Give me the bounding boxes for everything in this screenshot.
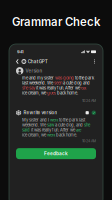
staticText: me and my sister — [22, 76, 55, 81]
button[interactable]: Apply rewrite — [92, 111, 96, 115]
staticText: she say — [22, 86, 35, 91]
staticText: she — [84, 123, 90, 128]
staticText: was going — [55, 76, 74, 81]
staticText: ate — [76, 128, 81, 133]
staticText: Grammar Check — [12, 15, 100, 29]
staticText: Rewrite version — [23, 110, 57, 115]
staticText: ChatGPT — [28, 59, 48, 64]
staticText: weekend. We — [22, 123, 47, 128]
staticText: ice cream, we — [22, 133, 47, 138]
staticText: 10:24 AM — [82, 139, 96, 143]
staticText: eat — [81, 86, 86, 91]
staticText: Feedback — [44, 151, 68, 156]
button[interactable]: Copy — [85, 111, 89, 115]
staticText: goes — [47, 91, 56, 96]
staticText: to the park last — [58, 118, 85, 123]
staticText: a cute dog, and — [54, 123, 84, 128]
staticText: it was really fun. After we — [30, 128, 76, 133]
staticText: back home. — [55, 133, 77, 138]
staticText: went — [50, 118, 58, 123]
staticText: 10:24 AM — [82, 99, 96, 103]
staticText: back home. — [56, 91, 78, 96]
staticText: a cute dog and — [62, 81, 90, 86]
staticText: to the park — [74, 76, 94, 81]
staticText: saw — [47, 123, 54, 128]
button[interactable]: Back — [16, 59, 21, 64]
button[interactable]: More options — [93, 59, 96, 64]
staticText: said — [22, 128, 30, 133]
staticText: went — [47, 133, 55, 138]
staticText: it was really fun. After we — [35, 86, 81, 91]
staticText: seen — [54, 81, 62, 86]
button[interactable]: Feedback — [16, 148, 96, 159]
staticText: 9:41 — [17, 49, 24, 54]
staticText: My sister and I — [22, 118, 50, 123]
staticText: Version — [26, 68, 43, 73]
staticText: ice cream, we — [22, 91, 47, 96]
staticText: last weekend. We — [22, 81, 54, 86]
